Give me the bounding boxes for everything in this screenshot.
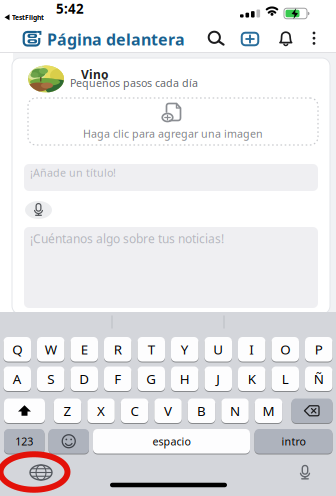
- staticText: L: [282, 370, 289, 388]
- staticText: ¡Añade un título!: [30, 165, 116, 180]
- button[interactable]: Buscar: [202, 25, 228, 51]
- staticText: X: [97, 402, 105, 420]
- button[interactable]: F: [104, 366, 131, 392]
- staticText: O: [280, 340, 290, 358]
- staticText: Página delantera: [47, 29, 185, 50]
- button[interactable]: Y: [171, 337, 198, 362]
- button[interactable]: Emoji: [48, 429, 89, 454]
- staticText: J: [216, 370, 220, 388]
- button[interactable]: D: [70, 366, 98, 392]
- staticText: B: [197, 402, 206, 420]
- button[interactable]: Borrar: [291, 398, 332, 424]
- button[interactable]: B: [188, 398, 215, 424]
- button[interactable]: Crear entrada: [237, 26, 263, 52]
- staticText: E: [81, 340, 88, 358]
- button[interactable]: X: [87, 398, 115, 424]
- button[interactable]: Página delantera: [20, 27, 192, 52]
- button[interactable]: Siguiente teclado: [29, 463, 53, 481]
- staticText: G: [146, 370, 156, 388]
- staticText: Pequeños pasos cada día: [70, 76, 198, 90]
- button[interactable]: K: [238, 366, 265, 392]
- button[interactable]: O: [271, 337, 299, 362]
- staticText: R: [114, 340, 122, 358]
- button[interactable]: intro: [254, 429, 332, 454]
- button[interactable]: N: [221, 398, 249, 424]
- button[interactable]: espacio: [93, 429, 250, 454]
- staticText: intro: [281, 434, 305, 448]
- button[interactable]: Más opciones: [306, 26, 322, 51]
- button[interactable]: Dictar: [24, 200, 52, 219]
- staticText: Z: [63, 402, 71, 420]
- staticText: D: [79, 370, 89, 388]
- staticText: U: [213, 340, 223, 358]
- button[interactable]: Z: [54, 398, 81, 424]
- staticText: 5:42: [56, 0, 84, 17]
- button[interactable]: Ñ: [305, 366, 332, 392]
- staticText: espacio: [152, 434, 190, 448]
- staticText: TestFlight: [12, 13, 44, 22]
- button[interactable]: I: [238, 337, 265, 362]
- button[interactable]: Dictado: [295, 463, 315, 483]
- button[interactable]: Vino: [12, 59, 330, 95]
- staticText: A: [13, 370, 22, 388]
- staticText: Haga clic para agregar una imagen: [83, 126, 263, 141]
- button[interactable]: Mayúsculas: [4, 398, 45, 424]
- staticText: ¡Cuéntanos algo sobre tus noticias!: [30, 230, 224, 246]
- staticText: F: [114, 370, 121, 388]
- staticText: Ñ: [314, 370, 324, 388]
- staticText: N: [230, 402, 240, 420]
- button[interactable]: Notificaciones: [273, 26, 299, 52]
- button[interactable]: A: [3, 366, 31, 392]
- button[interactable]: T: [137, 337, 165, 362]
- button[interactable]: W: [37, 337, 64, 362]
- staticText: H: [180, 370, 190, 388]
- staticText: S: [47, 370, 54, 388]
- button[interactable]: U: [204, 337, 232, 362]
- staticText: Q: [12, 340, 22, 358]
- staticText: Y: [181, 340, 189, 358]
- button[interactable]: 123: [4, 429, 44, 454]
- staticText: 123: [15, 434, 33, 448]
- button[interactable]: P: [305, 337, 332, 362]
- button[interactable]: J: [204, 366, 232, 392]
- button[interactable]: E: [70, 337, 98, 362]
- button[interactable]: Cuéntanos algo sobre tus noticias: [24, 227, 318, 308]
- staticText: M: [263, 402, 275, 420]
- button[interactable]: C: [121, 398, 148, 424]
- button[interactable]: Agregar una imagen: [27, 97, 319, 146]
- button[interactable]: L: [271, 366, 299, 392]
- button[interactable]: S: [37, 366, 64, 392]
- button[interactable]: G: [137, 366, 165, 392]
- staticText: T: [148, 340, 155, 358]
- button[interactable]: Añade un título: [24, 164, 318, 191]
- button[interactable]: R: [104, 337, 131, 362]
- staticText: C: [131, 402, 139, 420]
- staticText: K: [248, 370, 256, 388]
- staticText: P: [315, 340, 323, 358]
- staticText: V: [164, 402, 172, 420]
- staticText: I: [249, 340, 254, 358]
- button[interactable]: V: [154, 398, 182, 424]
- button[interactable]: H: [171, 366, 198, 392]
- button[interactable]: M: [255, 398, 282, 424]
- staticText: Vino: [81, 66, 109, 82]
- staticText: W: [45, 340, 57, 358]
- button[interactable]: Q: [3, 337, 31, 362]
